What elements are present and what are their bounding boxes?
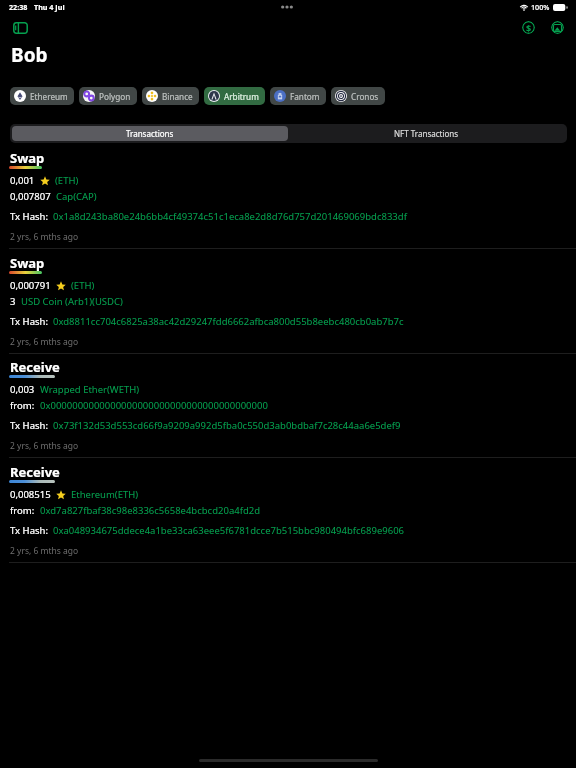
staticText: from: xyxy=(10,399,35,412)
button[interactable]: Arbitrum xyxy=(204,87,265,105)
staticText: Bob xyxy=(11,42,48,68)
staticText: 0,001 xyxy=(10,174,35,187)
button[interactable]: Swap xyxy=(0,257,576,361)
staticText: 2 yrs, 6 mths ago xyxy=(10,545,79,557)
staticText: 0xd8811cc704c6825a38ac42d29247fdd6662afb… xyxy=(53,315,404,328)
staticText: Binance xyxy=(162,91,193,102)
button[interactable]: Cronos xyxy=(331,87,385,105)
staticText: NFT Transactions xyxy=(394,128,459,139)
staticText: Polygon xyxy=(99,91,131,102)
staticText: Ethereum(ETH) xyxy=(71,488,139,501)
staticText: Fantom xyxy=(290,91,320,102)
button[interactable]: Ethereum xyxy=(10,87,74,105)
staticText: Swap xyxy=(10,254,45,272)
staticText: Tx Hash: xyxy=(10,419,48,432)
button[interactable]: Show NFTs xyxy=(551,21,564,34)
staticText: 2 yrs, 6 mths ago xyxy=(10,336,79,348)
staticText: 0,007807 xyxy=(10,190,51,203)
staticText: Tx Hash: xyxy=(10,210,48,223)
staticText: 0xd7a827fbaf38c98e8336c5658e4bcbcd20a4fd… xyxy=(40,504,261,517)
button[interactable]: Receive xyxy=(0,361,576,465)
staticText: 2 yrs, 6 mths ago xyxy=(10,231,79,243)
staticText: Arbitrum xyxy=(224,91,259,102)
staticText: Wrapped Ether(WETH) xyxy=(40,383,140,396)
staticText: Swap xyxy=(10,149,45,167)
staticText: 0x1a8d243ba80e24b6bb4cf49374c51c1eca8e2d… xyxy=(53,210,407,223)
staticText: $ xyxy=(526,22,532,34)
staticText: Thu 4 Jul xyxy=(34,2,65,12)
button[interactable]: Fantom xyxy=(270,87,326,105)
staticText: USD Coin (Arb1)(USDC) xyxy=(21,295,123,308)
staticText: Tx Hash: xyxy=(10,524,48,537)
button[interactable]: Binance xyxy=(142,87,199,105)
button[interactable]: Transactions xyxy=(12,126,288,141)
staticText: 0,000791 xyxy=(10,279,51,292)
staticText: 100% xyxy=(531,2,550,12)
staticText: Receive xyxy=(10,463,60,481)
staticText: 22:38 xyxy=(9,2,28,12)
button[interactable]: Swap xyxy=(0,152,576,256)
button[interactable]: NFT Transactions xyxy=(288,126,565,141)
staticText: Ethereum xyxy=(30,91,68,102)
button[interactable]: Show token balances xyxy=(522,21,535,34)
staticText: Tx Hash: xyxy=(10,315,48,328)
button[interactable]: Receive xyxy=(0,466,576,570)
staticText: Receive xyxy=(10,358,60,376)
staticText: Cap(CAP) xyxy=(56,190,97,203)
staticText: Transactions xyxy=(126,128,174,139)
staticText: 2 yrs, 6 mths ago xyxy=(10,440,79,452)
staticText: Cronos xyxy=(351,91,379,102)
staticText: 0,008515 xyxy=(10,488,51,501)
button[interactable]: Polygon xyxy=(79,87,137,105)
staticText: 3 xyxy=(10,295,16,308)
staticText: (ETH) xyxy=(55,174,79,187)
staticText: 0x73f132d53d553cd66f9a9209a992d5fba0c550… xyxy=(53,419,401,432)
staticText: (ETH) xyxy=(71,279,95,292)
staticText: 0xa048934675ddece4a1be33ca63eee5f6781dcc… xyxy=(53,524,405,537)
button[interactable]: Toggle sidebar xyxy=(8,16,32,40)
staticText: 0x00000000000000000000000000000000000000… xyxy=(40,399,268,412)
staticText: from: xyxy=(10,504,35,517)
staticText: 0,003 xyxy=(10,383,35,396)
